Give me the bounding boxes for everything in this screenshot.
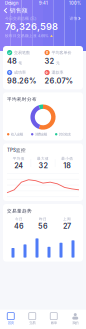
staticText: 18 (63, 161, 71, 170)
staticText: 98.26% (7, 76, 36, 85)
staticText: ↑ (8, 70, 12, 75)
staticText: 32 (38, 161, 47, 170)
staticText: 交易 (29, 321, 35, 325)
staticText: 笔 (18, 61, 22, 65)
staticText: 平均耗时分布 (7, 96, 37, 102)
staticText: 成功率 (14, 70, 26, 75)
staticText: 26.07% (44, 76, 72, 85)
button[interactable]: 首页 (0, 311, 21, 327)
staticText: 平均客单价 (51, 50, 71, 55)
staticText: 24 (14, 161, 23, 170)
button[interactable]: 销售额 (0, 6, 86, 14)
staticText: ✓ (8, 50, 12, 55)
staticText: 元 (56, 61, 60, 65)
button[interactable]: ¥ (44, 50, 79, 65)
button[interactable]: 我的 (64, 311, 86, 327)
staticText: 账单 (51, 321, 57, 325)
staticText: 今日交易总额 (元) (5, 16, 36, 21)
staticText: 消费金额 (35, 132, 47, 136)
staticText: 48 (7, 56, 17, 65)
staticText: 交易量趋势 (7, 208, 32, 214)
button[interactable]: 账单 (43, 311, 64, 327)
button[interactable]: ↓ (44, 70, 79, 85)
staticText: 我的 (72, 321, 78, 325)
staticText: ¥ (46, 50, 48, 55)
staticText: 退款率 (51, 70, 63, 75)
staticText: 76,326,598 (5, 21, 58, 32)
button[interactable]: ↑ (7, 70, 41, 85)
staticText: 其它收支 (59, 132, 71, 136)
staticText: 46 (14, 222, 24, 231)
staticText: 上周 (63, 217, 71, 221)
staticText: 较昨日交易额上涨 4.69% (5, 34, 49, 38)
staticText: 最大值 (37, 156, 49, 161)
staticText: 56 (38, 222, 48, 231)
staticText: Design (5, 1, 18, 6)
staticText: 27 (63, 222, 71, 231)
staticText: 最小值 (61, 156, 73, 161)
staticText: 昨日 (39, 217, 47, 221)
staticText: 首页 (8, 321, 14, 325)
staticText: 今日 (15, 217, 23, 221)
button[interactable]: ✓ (7, 50, 41, 65)
button[interactable]: 交易 (21, 311, 43, 327)
staticText: 收入金额 (11, 132, 23, 136)
staticText: 交易笔数 (14, 50, 30, 55)
staticText: 9:41 (39, 1, 48, 6)
staticText: ↓ (45, 70, 49, 75)
staticText: TPS监控 (7, 147, 26, 153)
staticText: 平均值 (13, 156, 25, 161)
staticText: 100% (69, 1, 81, 6)
staticText: 32 (44, 56, 54, 65)
staticText: 销售额 (10, 7, 28, 14)
staticText: 详情 (69, 16, 77, 21)
button[interactable]: 详情 (69, 16, 81, 21)
